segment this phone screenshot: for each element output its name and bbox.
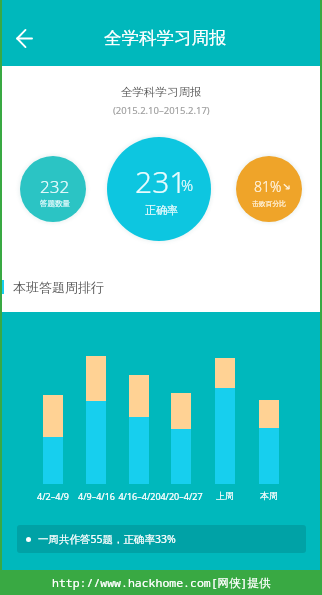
staticText: 81% <box>254 177 282 196</box>
staticText: 一周共作答55题，正确率33% <box>38 532 176 546</box>
staticText: 上周 <box>216 490 234 501</box>
staticText: 本班答题周排行 <box>13 279 104 295</box>
staticText: 4/20–4/27 <box>160 490 203 502</box>
staticText: 231 <box>135 161 187 202</box>
staticText: 击败百分比 <box>252 199 286 208</box>
staticText: 4/16–4/20 <box>118 490 161 502</box>
staticText: 4/2–4/9 <box>37 490 69 502</box>
button[interactable]: 232 <box>20 156 86 222</box>
staticText: 全学科学习周报 <box>104 27 227 49</box>
staticText: http://www.hackhome.com[网侠]提供 <box>52 575 271 591</box>
button[interactable]: Back <box>6 20 43 57</box>
button[interactable]: 231 <box>107 137 211 241</box>
staticText: 4/9–4/16 <box>78 490 115 502</box>
staticText: 本周 <box>260 490 278 501</box>
button[interactable]: 81% <box>236 156 302 222</box>
staticText: 答题数量 <box>40 199 70 208</box>
staticText: (2015.2.10–2015.2.17) <box>113 104 210 117</box>
staticText: 232 <box>40 175 70 198</box>
button[interactable]: 一周共作答55题，正确率33% <box>17 525 306 553</box>
staticText: 正确率 <box>145 203 178 217</box>
staticText: % <box>181 175 194 195</box>
staticText: 全学科学习周报 <box>121 85 202 99</box>
